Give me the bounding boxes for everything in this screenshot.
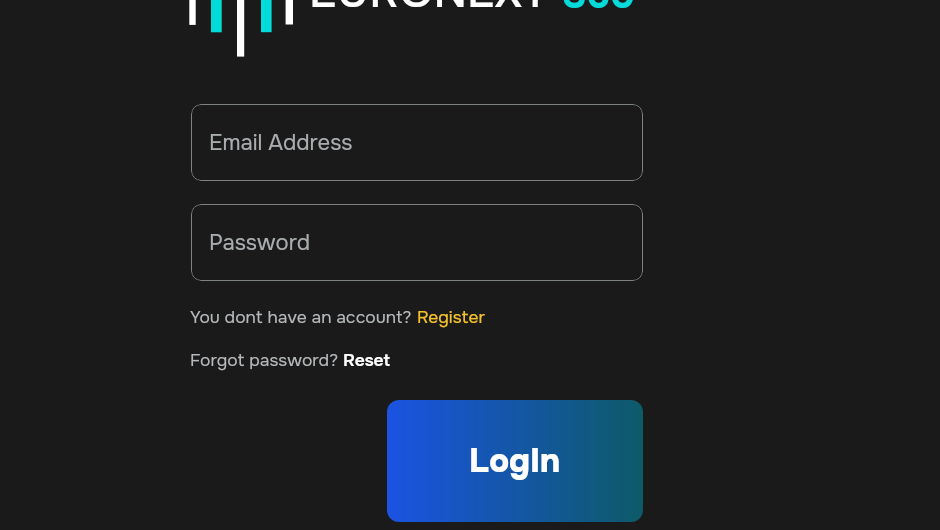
button[interactable]: Reset [343, 349, 391, 371]
button[interactable]: LogIn [387, 400, 643, 522]
staticText: You dont have an account? [190, 306, 417, 328]
staticText: Email Address [209, 129, 353, 157]
button[interactable]: Email Address [191, 104, 643, 181]
button[interactable]: Register [417, 306, 485, 328]
staticText: EURONEXT [309, 0, 549, 21]
button[interactable]: Password [191, 204, 643, 281]
staticText: LogIn [469, 440, 561, 482]
staticText: Forgot password? [190, 349, 343, 371]
staticText: Register [417, 306, 485, 328]
staticText: Reset [343, 349, 391, 371]
staticText: 360 [563, 0, 636, 19]
staticText: Password [209, 229, 310, 257]
